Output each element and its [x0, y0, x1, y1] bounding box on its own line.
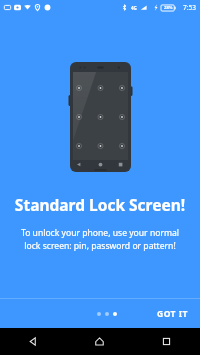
staticText: 7:53	[183, 3, 196, 12]
staticText: 28%	[164, 5, 173, 11]
button[interactable]: Back	[0, 328, 66, 355]
staticText: GOT IT	[157, 308, 188, 320]
staticText: Standard Lock Screen!	[8, 194, 192, 215]
button[interactable]: Home	[66, 328, 133, 355]
staticText: 4G	[131, 5, 137, 11]
button[interactable]: Recent apps	[133, 328, 200, 355]
button[interactable]: GOT IT	[145, 301, 200, 327]
staticText: To unlock your phone, use your normal lo…	[8, 227, 192, 251]
